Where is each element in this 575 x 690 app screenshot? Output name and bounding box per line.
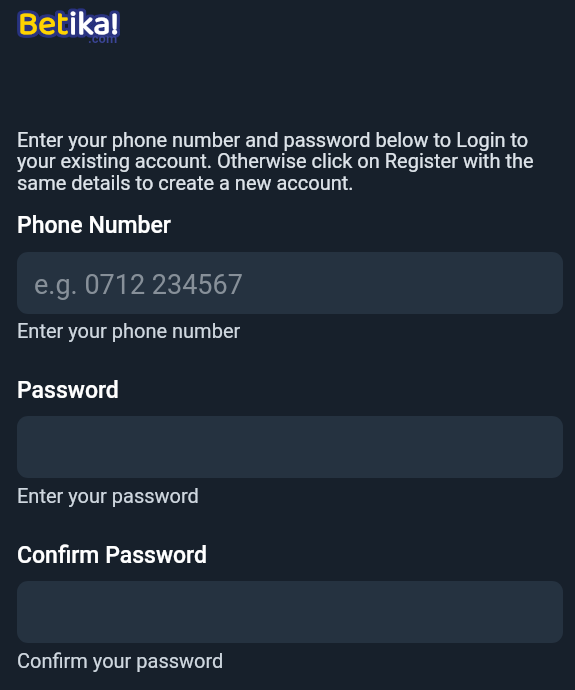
staticText: Bet bbox=[18, 0, 69, 46]
staticText: ika! bbox=[68, 0, 119, 52]
staticText: Bet bbox=[20, 0, 71, 47]
staticText: ika! bbox=[68, 0, 119, 46]
staticText: Bet bbox=[16, 0, 67, 52]
staticText: ika! bbox=[72, 0, 123, 51]
staticText: ika! bbox=[70, 0, 121, 50]
staticText: Bet bbox=[16, 0, 67, 50]
staticText: ika! bbox=[69, 0, 120, 46]
button[interactable]: Phone Number bbox=[17, 252, 563, 314]
staticText: ika! bbox=[70, 0, 121, 46]
staticText: Bet bbox=[15, 0, 66, 49]
staticText: Bet bbox=[19, 0, 70, 50]
staticText: ika! bbox=[68, 0, 119, 50]
staticText: Bet bbox=[17, 0, 68, 48]
staticText: Bet bbox=[16, 0, 67, 51]
staticText: Confirm your password bbox=[17, 649, 224, 672]
staticText: Bet bbox=[20, 0, 71, 49]
staticText: e.g. 0712 234567 bbox=[34, 269, 243, 301]
staticText: Bet bbox=[18, 0, 69, 52]
staticText: ika! bbox=[67, 0, 118, 52]
staticText: Bet bbox=[20, 0, 71, 51]
staticText: ika! bbox=[70, 0, 121, 52]
staticText: ika! bbox=[67, 0, 118, 48]
staticText: ika! bbox=[66, 0, 117, 50]
staticText: Bet bbox=[15, 0, 66, 51]
staticText: Bet bbox=[18, 0, 69, 49]
button[interactable]: Betika.com home bbox=[0, 0, 575, 52]
staticText: Phone Number bbox=[17, 212, 171, 239]
staticText: Bet bbox=[16, 0, 67, 48]
staticText: Bet bbox=[16, 0, 67, 47]
staticText: Bet bbox=[19, 0, 70, 52]
staticText: Enter your phone number bbox=[17, 319, 241, 342]
staticText: ika! bbox=[72, 0, 123, 50]
staticText: Bet bbox=[20, 0, 71, 50]
staticText: Enter your password bbox=[17, 484, 199, 507]
staticText: Bet bbox=[19, 0, 70, 48]
staticText: ika! bbox=[70, 0, 121, 48]
staticText: ika! bbox=[67, 0, 118, 51]
staticText: Bet bbox=[15, 0, 66, 47]
staticText: Bet bbox=[20, 0, 71, 48]
staticText: ika! bbox=[70, 0, 121, 49]
staticText: ika! bbox=[66, 0, 117, 51]
staticText: Bet bbox=[19, 0, 70, 47]
staticText: Bet bbox=[17, 0, 68, 47]
staticText: ika! bbox=[68, 0, 119, 49]
staticText: Enter your phone number and password bel… bbox=[17, 128, 563, 195]
staticText: ika! bbox=[71, 0, 122, 48]
staticText: ika! bbox=[71, 0, 122, 49]
staticText: ika! bbox=[70, 0, 121, 47]
staticText: ika! bbox=[71, 0, 122, 46]
staticText: Bet bbox=[18, 0, 69, 48]
staticText: Bet bbox=[21, 0, 72, 47]
staticText: Bet bbox=[21, 0, 72, 51]
staticText: ika! bbox=[68, 0, 119, 51]
staticText: Bet bbox=[17, 0, 68, 46]
staticText: ika! bbox=[69, 0, 120, 51]
staticText: ika! bbox=[69, 0, 120, 52]
staticText: ika! bbox=[68, 0, 119, 48]
staticText: Bet bbox=[17, 0, 68, 52]
staticText: ika! bbox=[72, 0, 123, 49]
staticText: ika! bbox=[69, 0, 120, 48]
staticText: .com bbox=[88, 31, 118, 46]
staticText: ika! bbox=[69, 0, 120, 47]
staticText: ika! bbox=[67, 0, 118, 49]
staticText: Confirm Password bbox=[17, 542, 207, 569]
staticText: ika! bbox=[70, 0, 121, 51]
staticText: Bet bbox=[17, 0, 68, 50]
staticText: Bet bbox=[21, 0, 72, 48]
staticText: Bet bbox=[18, 0, 69, 51]
staticText: Bet bbox=[21, 0, 72, 50]
staticText: Bet bbox=[19, 0, 70, 49]
staticText: ika! bbox=[66, 0, 117, 48]
staticText: ika! bbox=[67, 0, 118, 46]
staticText: Bet bbox=[20, 0, 71, 52]
staticText: Bet bbox=[17, 0, 68, 49]
staticText: Bet bbox=[21, 0, 72, 49]
staticText: Bet bbox=[17, 0, 68, 51]
staticText: ika! bbox=[68, 0, 119, 47]
staticText: ika! bbox=[69, 0, 120, 50]
staticText: ika! bbox=[71, 0, 122, 50]
staticText: Bet bbox=[15, 0, 66, 50]
staticText: Bet bbox=[19, 0, 70, 46]
staticText: ika! bbox=[67, 0, 118, 47]
staticText: Bet bbox=[16, 0, 67, 46]
staticText: ika! bbox=[66, 0, 117, 49]
staticText: ika! bbox=[72, 0, 123, 47]
staticText: Bet bbox=[19, 0, 70, 51]
staticText: ika! bbox=[66, 0, 117, 47]
staticText: ika! bbox=[71, 0, 122, 51]
staticText: Password bbox=[17, 377, 119, 404]
staticText: Bet bbox=[20, 0, 71, 46]
staticText: Bet bbox=[15, 0, 66, 48]
staticText: Bet bbox=[18, 0, 69, 47]
staticText: ika! bbox=[72, 0, 123, 48]
staticText: ika! bbox=[67, 0, 118, 50]
staticText: Bet bbox=[18, 0, 69, 50]
staticText: ika! bbox=[71, 0, 122, 47]
